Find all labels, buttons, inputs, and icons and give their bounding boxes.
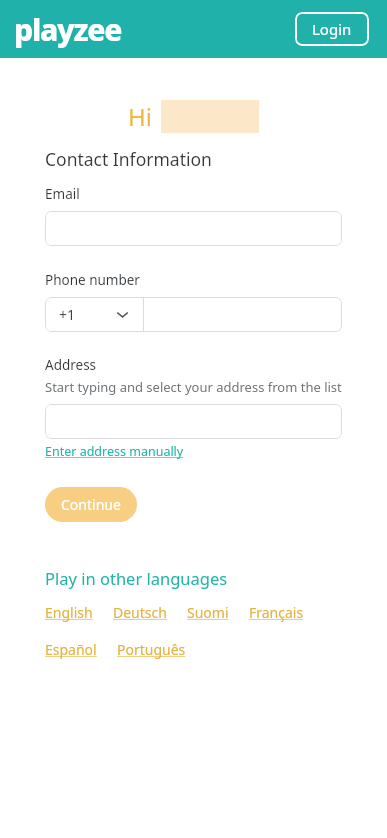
staticText: Português bbox=[117, 640, 186, 659]
button[interactable]: Português bbox=[117, 640, 186, 659]
staticText: Español bbox=[45, 640, 97, 659]
button[interactable]: Español bbox=[45, 640, 97, 659]
other: Select country code bbox=[116, 308, 129, 321]
button[interactable] bbox=[45, 404, 342, 439]
button[interactable]: Français bbox=[249, 603, 304, 622]
button[interactable]: Login bbox=[295, 12, 369, 46]
button[interactable]: Suomi bbox=[187, 603, 229, 622]
button[interactable]: Deutsch bbox=[113, 603, 167, 622]
button[interactable] bbox=[45, 211, 342, 246]
staticText: Deutsch bbox=[113, 603, 167, 622]
staticText: Continue bbox=[61, 495, 121, 514]
staticText: Hi bbox=[128, 100, 152, 133]
button[interactable]: playzee bbox=[12, 7, 124, 52]
button[interactable]: Continue bbox=[45, 487, 137, 522]
staticText: playzee bbox=[14, 9, 122, 50]
button[interactable]: Enter address manually bbox=[45, 443, 184, 460]
staticText: Phone number bbox=[45, 271, 140, 289]
staticText: Français bbox=[249, 603, 304, 622]
staticText: English bbox=[45, 603, 93, 622]
staticText: Address bbox=[45, 356, 97, 374]
staticText: Contact Information bbox=[45, 147, 212, 171]
staticText: Play in other languages bbox=[45, 567, 228, 589]
button[interactable]: English bbox=[45, 603, 93, 622]
staticText: Email bbox=[45, 185, 80, 203]
staticText: Suomi bbox=[187, 603, 229, 622]
staticText: Start typing and select your address fro… bbox=[45, 378, 342, 396]
staticText: Enter address manually bbox=[45, 443, 184, 460]
staticText: Login bbox=[312, 19, 352, 39]
button[interactable]: +1 bbox=[45, 297, 143, 332]
staticText: +1 bbox=[59, 305, 76, 324]
button[interactable] bbox=[144, 297, 342, 332]
